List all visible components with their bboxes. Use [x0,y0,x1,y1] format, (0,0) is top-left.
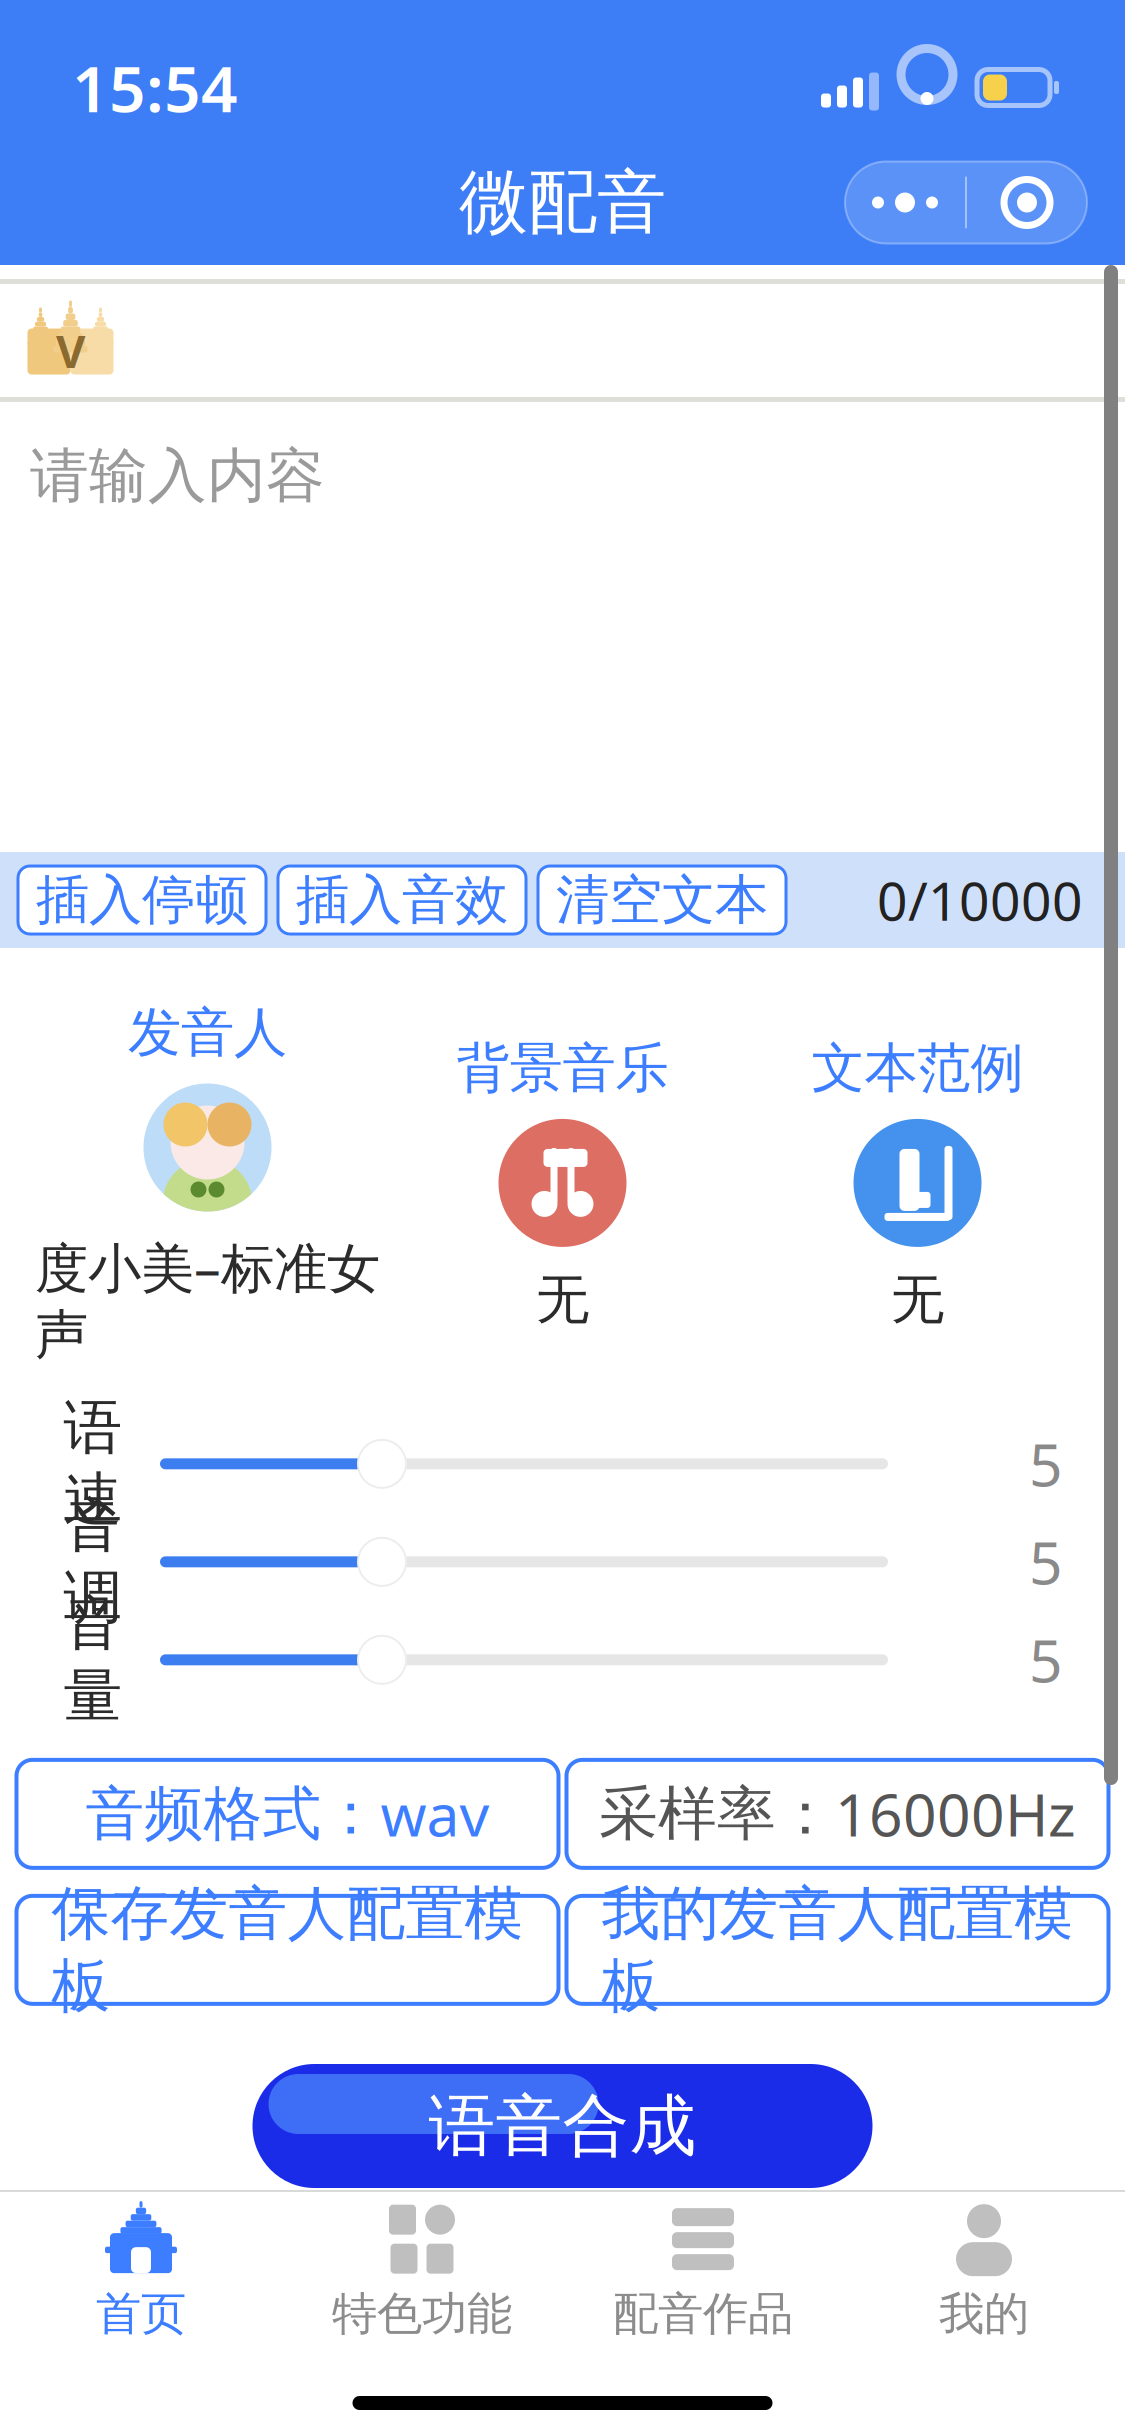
staticText: 16000Hz [835,1775,1076,1853]
button[interactable]: 首页 [0,2192,281,2352]
button[interactable]: 保存发音人配置模板 [16,1896,558,2004]
staticText: 保存发音人配置模板 [51,1878,523,2022]
button[interactable]: 胶囊菜单 [967,161,1087,243]
staticText: 微配音 [459,160,666,245]
staticText: 发音人 [128,1000,287,1065]
staticText: 0/10000 [877,865,1083,935]
staticText: wav [380,1775,489,1853]
staticText: 音频格式： [85,1778,380,1850]
staticText: 我的发音人配置模板 [601,1878,1073,2022]
staticText: 度小美–标准女声 [35,1231,380,1368]
button[interactable]: 配音作品 [562,2192,843,2352]
staticText: 语速 [63,1392,122,1536]
staticText: 我的 [939,2286,1029,2342]
button[interactable]: 插入停顿 [18,866,266,934]
button[interactable]: 发音人 [30,1000,385,1368]
button[interactable]: 语音合成 [252,2064,872,2188]
button[interactable]: 采样率： [566,1760,1108,1868]
button[interactable]: 特色功能 [281,2192,562,2352]
staticText: 特色功能 [332,2286,512,2342]
staticText: 5 [1029,1523,1063,1601]
staticText: 背景音乐 [456,1035,668,1101]
button[interactable]: 背景音乐 [385,1035,740,1332]
staticText: 15:54 [72,45,238,130]
button[interactable]: 音频格式： [16,1760,558,1868]
button[interactable]: 我的 [843,2192,1124,2352]
staticText: 5 [1029,1425,1063,1503]
staticText: 语音合成 [428,2085,696,2167]
staticText: 插入音效 [296,867,508,933]
staticText: 配音作品 [613,2286,793,2342]
button[interactable]: 插入音效 [278,866,526,934]
staticText: 5 [1029,1621,1063,1699]
staticText: 采样率： [599,1778,835,1850]
staticText: 插入停顿 [36,867,248,933]
button[interactable]: 文本范例 [740,1035,1095,1332]
button[interactable]: 我的发音人配置模板 [566,1896,1108,2004]
button[interactable]: 清空文本 [538,866,786,934]
staticText: 清空文本 [556,867,768,933]
button[interactable]: 更多 [845,161,965,243]
staticText: 无 [536,1267,589,1332]
staticText: 首页 [96,2286,186,2342]
staticText: 文本范例 [811,1035,1023,1101]
staticText: 音调 [63,1490,122,1634]
staticText: V [56,320,85,381]
staticText: 音量 [63,1588,122,1732]
staticText: 请输入内容 [30,440,325,512]
staticText: 无 [891,1267,944,1332]
